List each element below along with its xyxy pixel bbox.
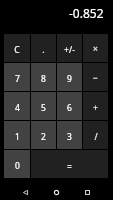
staticText: 8 <box>41 73 46 85</box>
staticText: 9 <box>67 73 72 85</box>
button[interactable]: + <box>83 92 108 120</box>
button[interactable]: = <box>31 150 108 178</box>
staticText: 6 <box>67 102 72 114</box>
button[interactable]: 3 <box>57 121 82 149</box>
button[interactable]: 5 <box>31 92 56 120</box>
button[interactable]: Recents <box>76 184 99 200</box>
button[interactable]: 1 <box>4 121 30 149</box>
button[interactable]: 8 <box>31 63 56 91</box>
staticText: = <box>67 161 72 173</box>
staticText: 2 <box>41 131 46 143</box>
button[interactable]: Home <box>45 184 68 200</box>
button[interactable]: 0 <box>4 150 30 178</box>
staticText: 0 <box>15 160 20 172</box>
button[interactable]: − <box>83 63 108 91</box>
button[interactable]: 7 <box>4 63 30 91</box>
button[interactable]: × <box>83 34 108 62</box>
button[interactable]: . <box>31 34 56 62</box>
staticText: + <box>93 102 98 114</box>
staticText: 4 <box>15 102 20 114</box>
staticText: 3 <box>67 131 72 143</box>
button[interactable]: 4 <box>4 92 30 120</box>
staticText: × <box>93 43 98 55</box>
button[interactable]: +/- <box>57 34 82 62</box>
staticText: 5 <box>41 102 46 114</box>
button[interactable]: 2 <box>31 121 56 149</box>
button[interactable]: 6 <box>57 92 82 120</box>
staticText: − <box>93 72 98 84</box>
button[interactable]: / <box>83 121 108 149</box>
staticText: C <box>14 44 20 56</box>
staticText: . <box>42 44 45 56</box>
staticText: 1 <box>15 131 20 143</box>
button[interactable]: 9 <box>57 63 82 91</box>
button[interactable]: Back <box>14 184 37 200</box>
staticText: 7 <box>15 73 20 85</box>
staticText: +/- <box>64 44 75 56</box>
staticText: -0.852 <box>69 5 104 21</box>
button[interactable]: C <box>4 34 30 62</box>
staticText: / <box>94 131 98 143</box>
